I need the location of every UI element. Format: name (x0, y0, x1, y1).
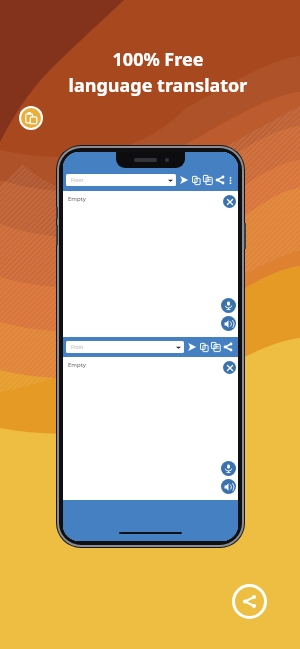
button[interactable]: Share (232, 584, 267, 619)
button[interactable]: From (66, 174, 176, 186)
button[interactable]: Copy (190, 174, 202, 186)
button[interactable]: Translate (178, 174, 190, 186)
staticText: 100% Free language translator (8, 47, 300, 97)
button[interactable]: Copy to clipboard (21, 108, 41, 128)
button[interactable]: Speak into microphone (221, 461, 236, 476)
staticText: Empty (68, 195, 86, 203)
staticText: From (71, 344, 84, 351)
button[interactable]: Speak into microphone (221, 298, 236, 313)
button[interactable]: Share (222, 341, 234, 353)
button[interactable]: Clear text (223, 361, 236, 374)
button[interactable]: Share (214, 174, 226, 186)
staticText: Empty (68, 361, 86, 369)
button[interactable]: Play audio (221, 479, 236, 494)
staticText: From (71, 177, 84, 184)
button[interactable]: Copy all (210, 341, 222, 353)
button[interactable]: Translate (186, 341, 198, 353)
button[interactable]: From (66, 341, 184, 353)
button[interactable]: Play audio (221, 316, 236, 331)
button[interactable]: Clear text (223, 195, 236, 208)
button[interactable]: Copy all (202, 174, 214, 186)
button[interactable]: Copy (198, 341, 210, 353)
button[interactable]: More options (226, 176, 235, 185)
